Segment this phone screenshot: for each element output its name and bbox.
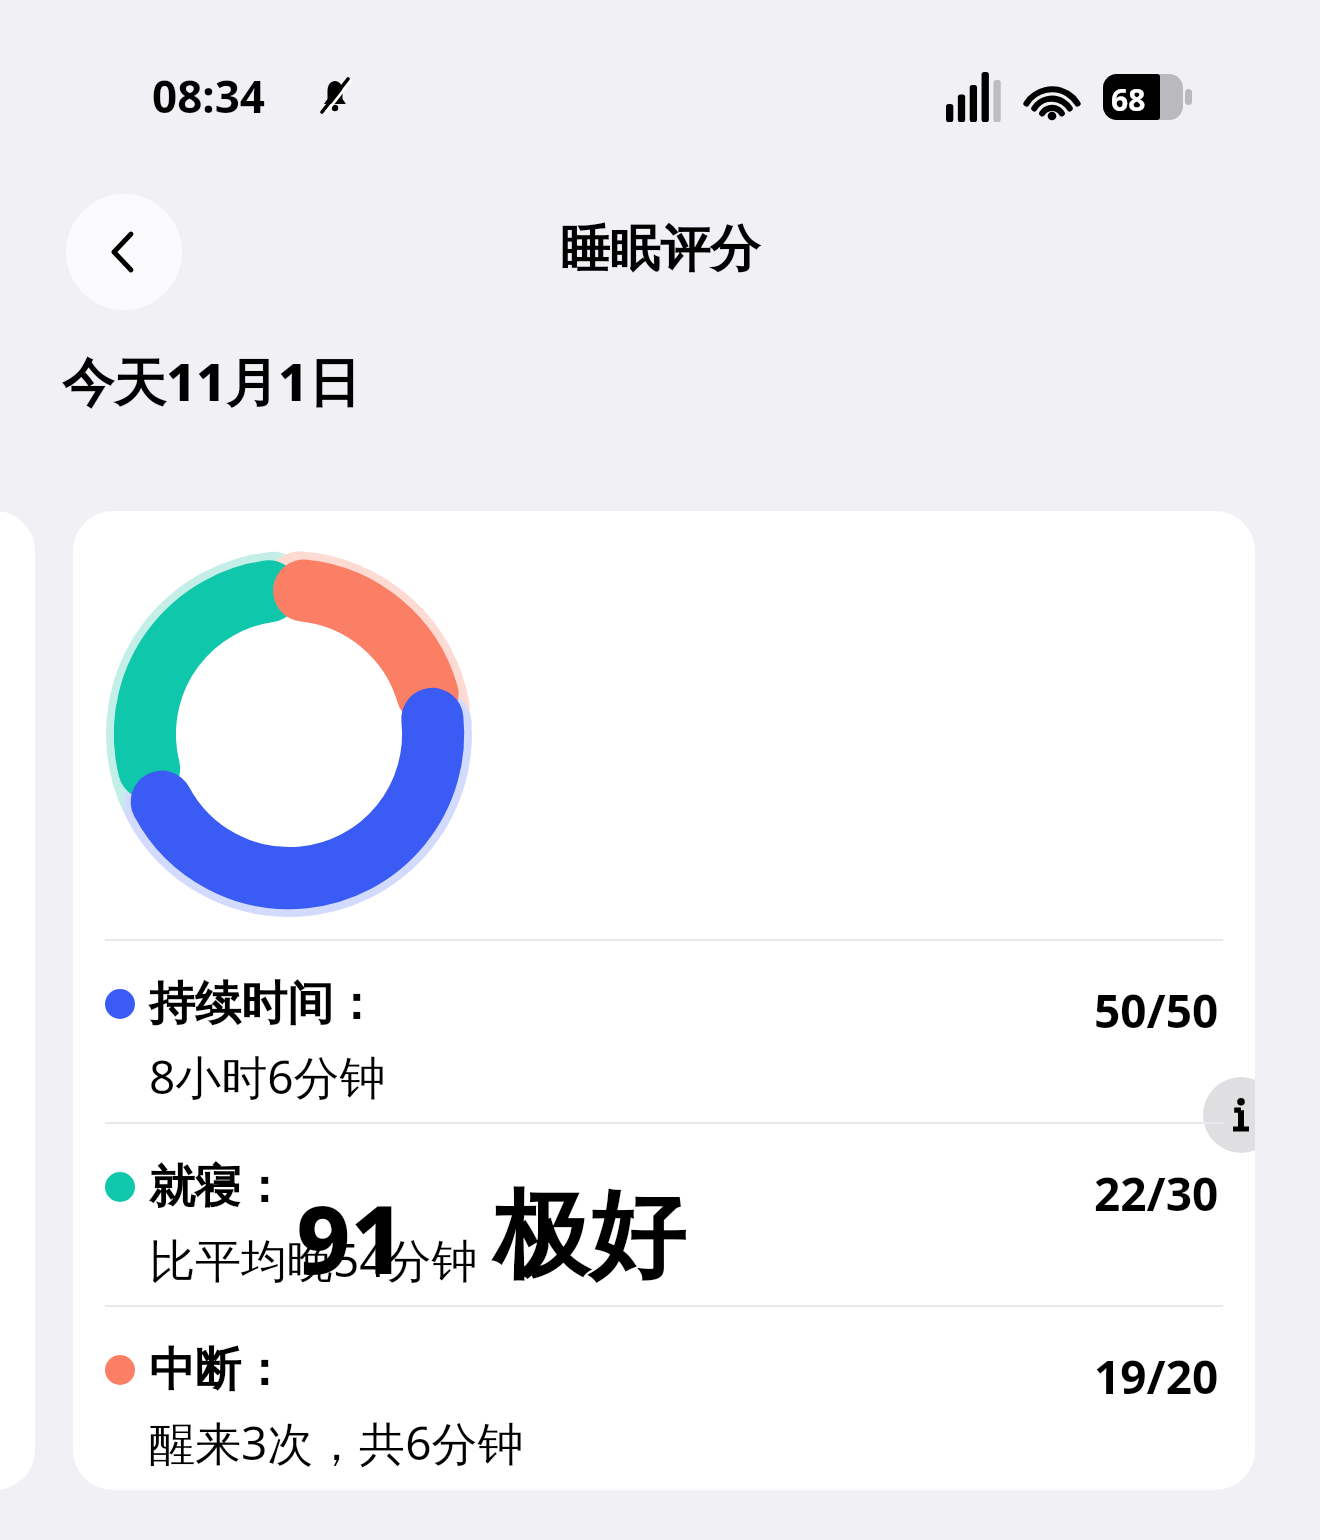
- staticText: 睡眠评分: [560, 218, 760, 281]
- staticText: 今天11月1日: [62, 345, 361, 416]
- staticText: 比平均晚54分钟: [149, 1228, 478, 1291]
- staticText: 91: [296, 1174, 405, 1302]
- staticText: 08:34: [152, 66, 266, 126]
- button[interactable]: 就寝：: [73, 1124, 1255, 1305]
- staticText: 19/20: [1094, 1345, 1219, 1408]
- staticText: 极好: [493, 1176, 685, 1297]
- button[interactable]: Info: [1203, 1077, 1255, 1153]
- button[interactable]: 持续时间：: [73, 941, 1255, 1122]
- staticText: 22/30: [1094, 1162, 1219, 1225]
- staticText: 持续时间：: [149, 975, 379, 1033]
- staticText: 50/50: [1094, 979, 1219, 1042]
- staticText: 就寝：: [149, 1158, 287, 1216]
- staticText: 68: [1111, 79, 1146, 120]
- staticText: 8小时6分钟: [149, 1045, 386, 1108]
- button[interactable]: 中断：: [73, 1307, 1255, 1488]
- staticText: 醒来3次，共6分钟: [149, 1411, 524, 1474]
- button[interactable]: Back: [66, 194, 182, 310]
- staticText: 中断：: [149, 1341, 287, 1399]
